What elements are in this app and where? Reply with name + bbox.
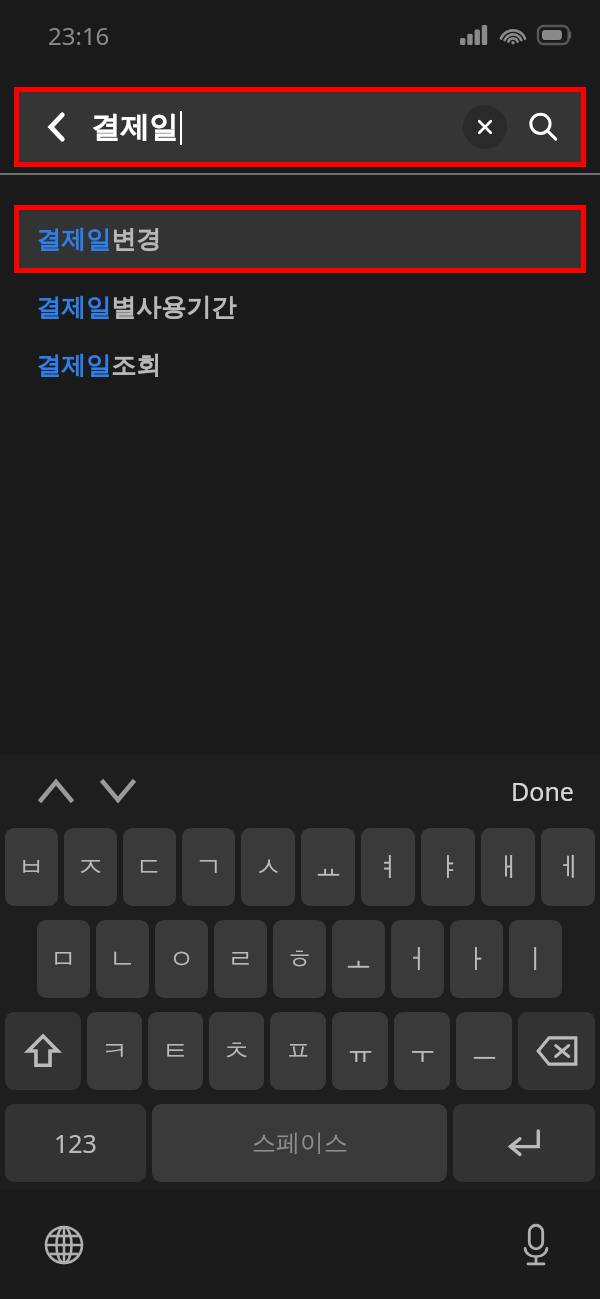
button[interactable]: ㅇ xyxy=(155,920,208,998)
staticText: ㅠ xyxy=(347,1034,374,1068)
button[interactable]: ㅠ xyxy=(332,1012,388,1090)
button[interactable]: ㅗ xyxy=(332,920,385,998)
button[interactable]: Change keyboard language xyxy=(36,1217,92,1273)
button[interactable]: ㅁ xyxy=(37,920,90,998)
staticText: ㅅ xyxy=(255,850,282,884)
staticText: ㄴ xyxy=(109,942,136,976)
staticText: ㅑ xyxy=(435,850,462,884)
staticText: 스페이스 xyxy=(252,1128,348,1158)
button[interactable]: ㅈ xyxy=(64,828,117,906)
button[interactable]: ㄹ xyxy=(214,920,267,998)
button[interactable]: Next field xyxy=(92,765,144,817)
staticText: ㅔ xyxy=(555,850,582,884)
staticText: ㅁ xyxy=(50,942,77,976)
staticText: ㅇ xyxy=(168,942,195,976)
staticText: ㄷ xyxy=(136,850,163,884)
button[interactable]: Clear xyxy=(463,105,507,149)
button[interactable]: ㅎ xyxy=(273,920,326,998)
staticText: ㅎ xyxy=(286,942,313,976)
button[interactable]: ㅊ xyxy=(209,1012,264,1090)
button[interactable]: 스페이스 xyxy=(152,1104,447,1182)
button[interactable]: ㅜ xyxy=(394,1012,450,1090)
staticText: ㅜ xyxy=(409,1034,436,1068)
staticText: ㅂ xyxy=(18,850,45,884)
button[interactable]: ㅕ xyxy=(361,828,415,906)
button[interactable]: Voice input xyxy=(508,1217,564,1273)
staticText: 23:16 xyxy=(48,19,110,52)
button[interactable]: 결제일변경 xyxy=(19,210,581,268)
button[interactable]: ㅔ xyxy=(541,828,595,906)
staticText: ㅊ xyxy=(223,1034,250,1068)
button[interactable]: Back xyxy=(19,92,581,162)
button[interactable]: ㄷ xyxy=(123,828,176,906)
staticText: 결제일조회 xyxy=(36,350,161,381)
staticText: ㄹ xyxy=(227,942,254,976)
staticText: ㅏ xyxy=(463,942,490,976)
button[interactable]: ㅏ xyxy=(450,920,503,998)
staticText: ㅛ xyxy=(315,850,342,884)
staticText: 결제일변경 xyxy=(36,224,161,255)
button[interactable]: 123 xyxy=(5,1104,146,1182)
button[interactable]: ㅓ xyxy=(391,920,444,998)
staticText: ㅌ xyxy=(162,1034,189,1068)
staticText: ㅡ xyxy=(471,1034,498,1068)
button[interactable]: Backspace xyxy=(518,1012,595,1090)
staticText: ㅐ xyxy=(495,850,522,884)
button[interactable]: ㄱ xyxy=(182,828,235,906)
button[interactable]: Done xyxy=(499,766,586,816)
button[interactable]: ㅣ xyxy=(509,920,562,998)
staticText: ㅕ xyxy=(375,850,402,884)
button[interactable]: Back xyxy=(35,105,79,149)
button[interactable]: ㅍ xyxy=(270,1012,326,1090)
button[interactable]: ㄴ xyxy=(96,920,149,998)
button[interactable]: ㅐ xyxy=(481,828,535,906)
staticText: ㄱ xyxy=(195,850,222,884)
button[interactable]: ㅂ xyxy=(5,828,58,906)
staticText: 결제일별사용기간 xyxy=(36,292,236,323)
button[interactable]: Return xyxy=(453,1104,595,1182)
staticText: Done xyxy=(511,774,574,808)
staticText: ㅍ xyxy=(285,1034,312,1068)
staticText: ㅣ xyxy=(522,942,549,976)
button[interactable]: ㅛ xyxy=(301,828,355,906)
staticText: 결제일 xyxy=(91,109,178,146)
staticText: 123 xyxy=(54,1126,97,1160)
button[interactable]: Shift xyxy=(5,1012,81,1090)
button[interactable]: 결제일조회 xyxy=(0,336,600,394)
button[interactable]: ㅑ xyxy=(421,828,475,906)
button[interactable]: ㅌ xyxy=(148,1012,203,1090)
staticText: ㅗ xyxy=(345,942,372,976)
staticText: ㅈ xyxy=(77,850,104,884)
button[interactable]: ㅅ xyxy=(241,828,295,906)
button[interactable]: Search xyxy=(521,105,565,149)
button[interactable]: 결제일별사용기간 xyxy=(0,278,600,336)
staticText: ㅓ xyxy=(404,942,431,976)
button[interactable]: ㅋ xyxy=(87,1012,142,1090)
button[interactable]: Previous field xyxy=(30,765,82,817)
button[interactable]: ㅡ xyxy=(456,1012,512,1090)
staticText: ㅋ xyxy=(101,1034,128,1068)
